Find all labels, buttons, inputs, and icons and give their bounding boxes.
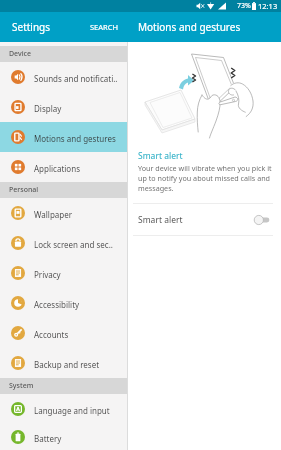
- button[interactable]: Accessibility: [0, 288, 127, 318]
- staticText: Your device will vibrate when you pick i…: [138, 163, 275, 193]
- staticText: Device: [9, 49, 32, 59]
- staticText: Accounts: [34, 329, 69, 340]
- button[interactable]: Smart alert: [128, 204, 281, 235]
- staticText: Backup and reset: [34, 359, 100, 370]
- staticText: Battery: [34, 433, 62, 444]
- staticText: Accessibility: [34, 299, 80, 310]
- staticText: Sounds and notificati..: [34, 73, 118, 84]
- staticText: SEARCH: [90, 22, 119, 32]
- staticText: Language and input: [34, 405, 110, 416]
- staticText: Motions and gestures: [138, 20, 241, 34]
- staticText: Applications: [34, 163, 80, 174]
- staticText: System: [9, 381, 34, 391]
- staticText: Lock screen and sec..: [34, 239, 113, 250]
- button[interactable]: Backup and reset: [0, 348, 127, 378]
- button[interactable]: Accounts: [0, 318, 127, 348]
- button[interactable]: Lock screen and sec..: [0, 228, 127, 258]
- staticText: Motions and gestures: [34, 133, 116, 144]
- button[interactable]: Sounds and notificati..: [0, 62, 127, 92]
- button[interactable]: Privacy: [0, 258, 127, 288]
- button[interactable]: Applications: [0, 152, 127, 182]
- button[interactable]: Display: [0, 92, 127, 122]
- staticText: Settings: [12, 20, 51, 34]
- staticText: 73%: [237, 1, 251, 11]
- staticText: Display: [34, 103, 62, 114]
- button[interactable]: Language and input: [0, 394, 127, 424]
- staticText: Smart alert: [138, 150, 183, 162]
- button[interactable]: Battery: [0, 424, 127, 450]
- button[interactable]: Motions and gestures: [0, 122, 127, 152]
- staticText: Personal: [9, 185, 39, 195]
- staticText: Smart alert: [138, 214, 183, 226]
- staticText: Wallpaper: [34, 209, 73, 220]
- button[interactable]: SEARCH: [84, 12, 127, 42]
- staticText: 12:13: [258, 1, 278, 11]
- button[interactable]: Wallpaper: [0, 198, 127, 228]
- staticText: Privacy: [34, 269, 61, 280]
